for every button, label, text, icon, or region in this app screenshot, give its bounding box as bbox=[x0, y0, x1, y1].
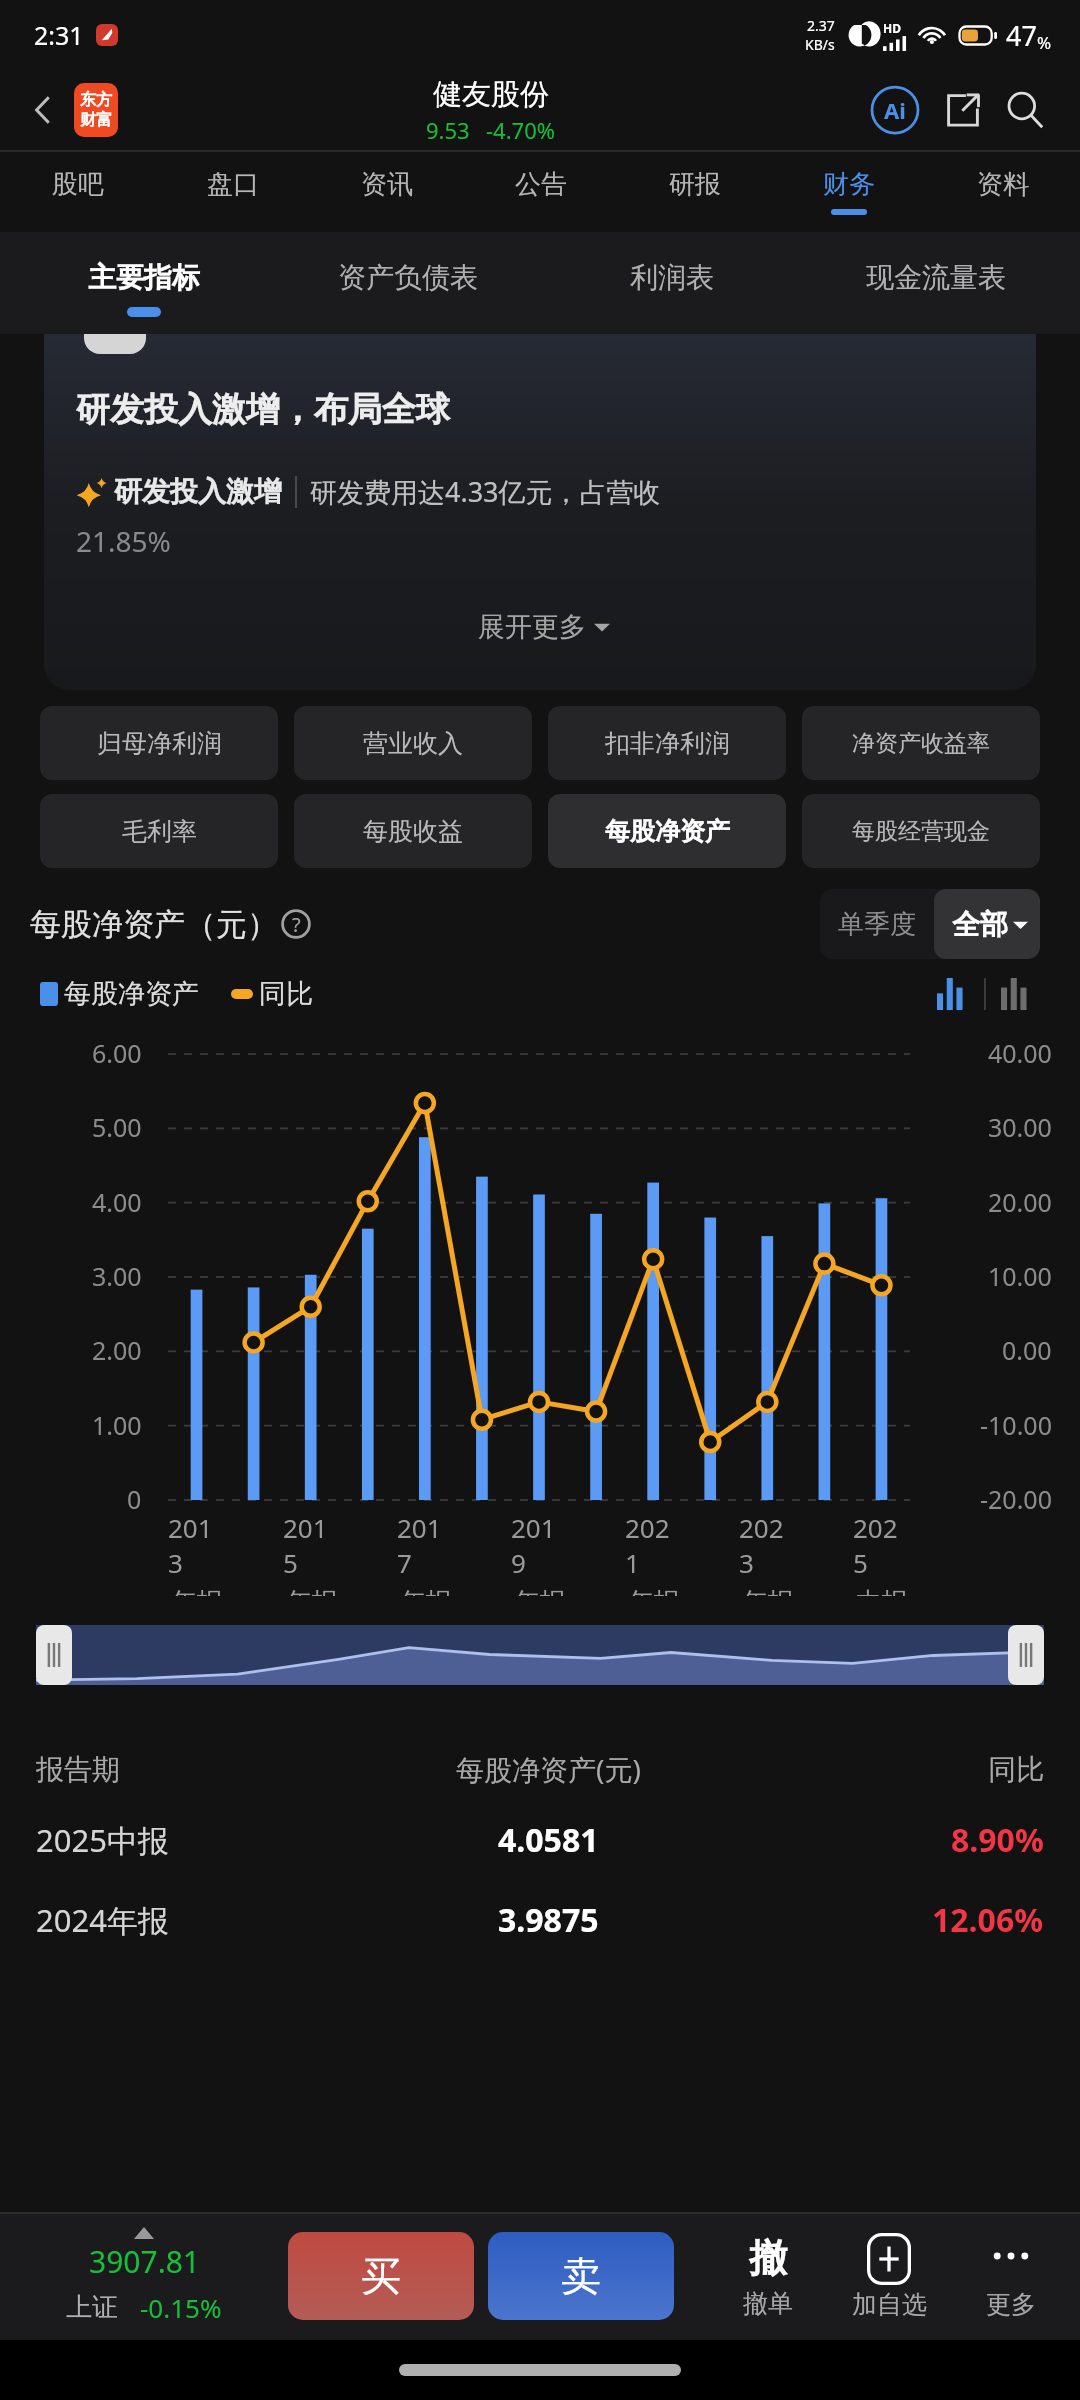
button[interactable]: 股吧 bbox=[0, 150, 155, 232]
staticText: 20.00 bbox=[988, 1185, 1052, 1219]
staticText: 2017 bbox=[397, 1510, 454, 1580]
staticText: 40.00 bbox=[988, 1036, 1052, 1070]
button[interactable]: 资料 bbox=[926, 150, 1080, 232]
staticText: 2025 bbox=[853, 1510, 910, 1580]
button[interactable]: 加自选 bbox=[826, 2212, 952, 2340]
staticText: 12.06% bbox=[932, 1898, 1044, 1942]
staticText: 2.00 bbox=[92, 1333, 142, 1367]
button[interactable]: 资讯 bbox=[310, 150, 464, 232]
staticText: 卖 bbox=[561, 2251, 601, 2301]
button[interactable]: 买 bbox=[288, 2232, 474, 2320]
staticText: 8.90% bbox=[951, 1818, 1044, 1862]
staticText: 2023 bbox=[739, 1510, 796, 1580]
staticText: 利润表 bbox=[630, 260, 714, 295]
button[interactable]: 每股经营现金 bbox=[802, 794, 1040, 868]
button[interactable]: 每股净资产 bbox=[548, 794, 786, 868]
staticText: 2:31 bbox=[34, 18, 84, 52]
staticText: 9.53 bbox=[426, 115, 470, 145]
staticText: 4.00 bbox=[92, 1185, 142, 1219]
button[interactable]: AI assistant bbox=[864, 79, 926, 141]
staticText: 每股净资产 bbox=[64, 977, 199, 1011]
staticText: 每股净资产 bbox=[605, 816, 730, 847]
staticText: 同比 bbox=[259, 977, 313, 1011]
button[interactable]: 归母净利润 bbox=[40, 706, 278, 780]
button[interactable]: 盘口 bbox=[155, 150, 310, 232]
button[interactable]: 3907.81 bbox=[0, 2212, 288, 2340]
staticText: 研发投入激增，布局全球 bbox=[76, 388, 450, 431]
button[interactable]: 每股收益 bbox=[294, 794, 532, 868]
button[interactable]: 现金流量表 bbox=[804, 232, 1068, 334]
staticText: 0.00 bbox=[1002, 1333, 1052, 1367]
staticText: 年报 bbox=[628, 1586, 680, 1596]
staticText: 报告期 bbox=[36, 1752, 120, 1787]
staticText: -10.00 bbox=[980, 1408, 1052, 1442]
button[interactable]: 研报 bbox=[618, 150, 772, 232]
staticText: KB/s bbox=[805, 35, 835, 54]
staticText: 年报 bbox=[400, 1586, 452, 1596]
staticText: 6.00 bbox=[92, 1036, 142, 1070]
button[interactable]: 毛利率 bbox=[40, 794, 278, 868]
button[interactable]: Column chart view bbox=[994, 971, 1040, 1017]
staticText: 47 bbox=[1006, 17, 1037, 54]
staticText: 30.00 bbox=[988, 1110, 1052, 1144]
staticText: 资产负债表 bbox=[338, 260, 478, 295]
staticText: 单季度 bbox=[838, 908, 916, 941]
button[interactable]: 2024年报 bbox=[36, 1880, 1044, 1960]
button[interactable]: East Money bbox=[74, 83, 118, 137]
staticText: 每股净资产（元） bbox=[30, 905, 278, 944]
staticText: 年报 bbox=[171, 1586, 223, 1596]
button[interactable]: 净资产收益率 bbox=[802, 706, 1040, 780]
staticText: -4.70% bbox=[486, 115, 556, 145]
staticText: 同比 bbox=[988, 1752, 1044, 1787]
button[interactable]: Search bbox=[996, 81, 1054, 139]
staticText: 3.9875 bbox=[498, 1898, 599, 1942]
button[interactable]: 公告 bbox=[464, 150, 618, 232]
button[interactable]: 更多 bbox=[952, 2212, 1070, 2340]
button[interactable]: 研发投入激增，布局全球 bbox=[44, 334, 1036, 690]
staticText: 盘口 bbox=[207, 168, 259, 201]
staticText: 21.85% bbox=[76, 522, 171, 560]
staticText: 上证 bbox=[66, 2291, 118, 2324]
button[interactable]: 财务 bbox=[772, 150, 926, 232]
staticText: 5.00 bbox=[92, 1110, 142, 1144]
staticText: 毛利率 bbox=[122, 816, 197, 847]
button[interactable]: 卖 bbox=[488, 2232, 674, 2320]
staticText: 中报 bbox=[856, 1586, 908, 1596]
staticText: 归母净利润 bbox=[97, 728, 222, 759]
button[interactable]: 主要指标 bbox=[12, 232, 276, 334]
staticText: 东方 bbox=[80, 90, 112, 110]
staticText: 扣非净利润 bbox=[605, 728, 730, 759]
staticText: ? bbox=[292, 911, 301, 938]
staticText: 4.0581 bbox=[498, 1818, 599, 1862]
button[interactable]: Back bbox=[16, 83, 70, 137]
button[interactable]: Range selector bbox=[36, 1625, 1044, 1685]
button[interactable]: 资产负债表 bbox=[276, 232, 540, 334]
button[interactable]: 营业收入 bbox=[294, 706, 532, 780]
staticText: 3.00 bbox=[92, 1259, 142, 1293]
button[interactable]: 全部 bbox=[952, 889, 1028, 959]
button[interactable]: Bar chart view bbox=[930, 971, 976, 1017]
button[interactable]: Help bbox=[278, 906, 314, 942]
button[interactable]: Share bbox=[934, 81, 992, 139]
button[interactable]: 撤 bbox=[710, 2212, 826, 2340]
staticText: 3907.81 bbox=[89, 2241, 200, 2282]
staticText: % bbox=[1037, 31, 1052, 54]
button[interactable]: 扣非净利润 bbox=[548, 706, 786, 780]
staticText: 资料 bbox=[977, 168, 1029, 201]
staticText: 2.37 bbox=[807, 16, 835, 35]
staticText: 年报 bbox=[286, 1586, 338, 1596]
staticText: 每股经营现金 bbox=[852, 817, 990, 846]
button[interactable]: 2025中报 bbox=[36, 1800, 1044, 1880]
staticText: 研报 bbox=[669, 168, 721, 201]
staticText: Ai bbox=[884, 95, 906, 125]
staticText: 营业收入 bbox=[363, 728, 463, 759]
staticText: 1.00 bbox=[92, 1408, 142, 1442]
staticText: 健友股份 bbox=[433, 76, 549, 113]
button[interactable]: 利润表 bbox=[540, 232, 804, 334]
staticText: 主要指标 bbox=[88, 260, 200, 295]
staticText: 年报 bbox=[742, 1586, 794, 1596]
staticText: 研发费用达4.33亿元，占营收 bbox=[310, 473, 661, 510]
staticText: 现金流量表 bbox=[866, 260, 1006, 295]
button[interactable]: 单季度 bbox=[838, 889, 916, 959]
staticText: 净资产收益率 bbox=[852, 729, 990, 758]
